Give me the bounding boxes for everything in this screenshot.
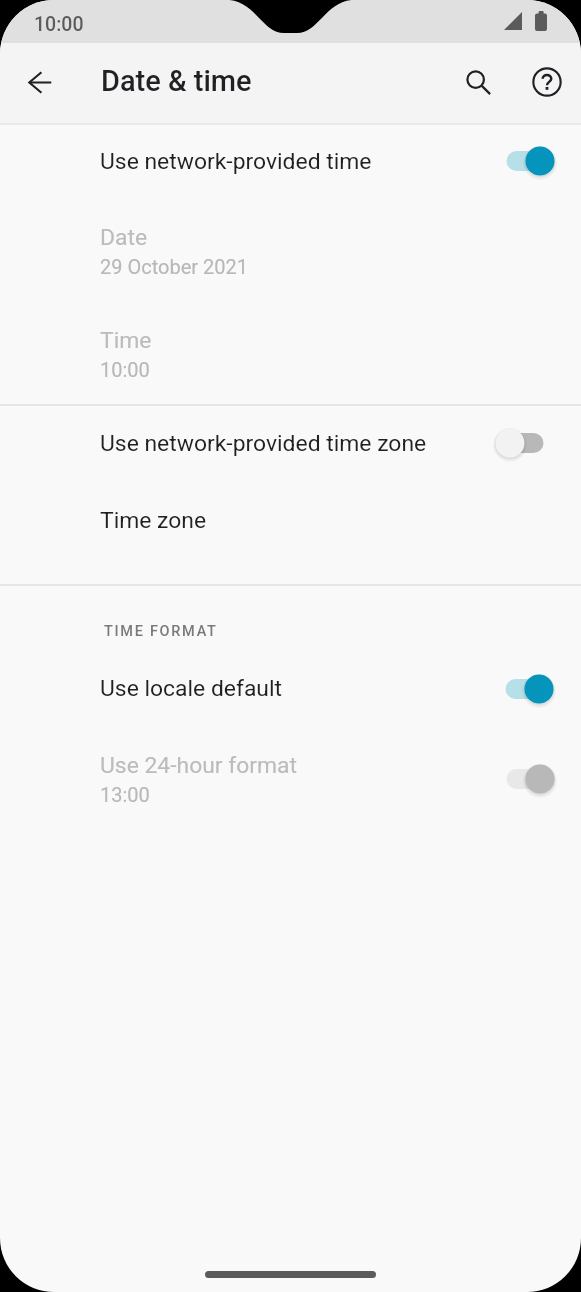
button[interactable]: Use locale default (0, 652, 581, 728)
other: Home (205, 1271, 376, 1278)
other: Battery full (535, 11, 547, 31)
staticText: Use 24-hour format (100, 752, 298, 779)
staticText: Time (100, 327, 152, 354)
staticText: 10:00 (100, 358, 150, 381)
button[interactable]: Switch, on (505, 137, 575, 185)
button[interactable]: Date (0, 205, 581, 289)
button[interactable]: Search (451, 55, 505, 109)
button[interactable]: Use network-provided time zone (0, 406, 581, 490)
button[interactable]: Switch, off (475, 419, 545, 467)
staticText: Use network-provided time (100, 148, 372, 175)
staticText: 10:00 (34, 13, 84, 36)
button[interactable]: Time (0, 289, 581, 404)
button[interactable]: Help (520, 55, 574, 109)
staticText: Use network-provided time zone (100, 430, 427, 457)
staticText: 29 October 2021 (100, 255, 248, 278)
button[interactable]: Use network-provided time (0, 124, 581, 205)
button[interactable]: Navigate up (14, 56, 66, 108)
staticText: Date & time (101, 64, 252, 98)
button[interactable]: Switch, on (504, 665, 574, 713)
staticText: Date (100, 224, 148, 251)
button[interactable]: Switch, on (505, 755, 575, 803)
staticText: Use locale default (100, 675, 283, 702)
button[interactable]: Use 24-hour format (0, 728, 581, 820)
staticText: TIME FORMAT (104, 623, 218, 640)
button[interactable]: Time zone (0, 490, 581, 584)
other: Mobile signal full (504, 12, 522, 30)
staticText: 13:00 (100, 783, 150, 806)
staticText: Time zone (100, 507, 207, 534)
